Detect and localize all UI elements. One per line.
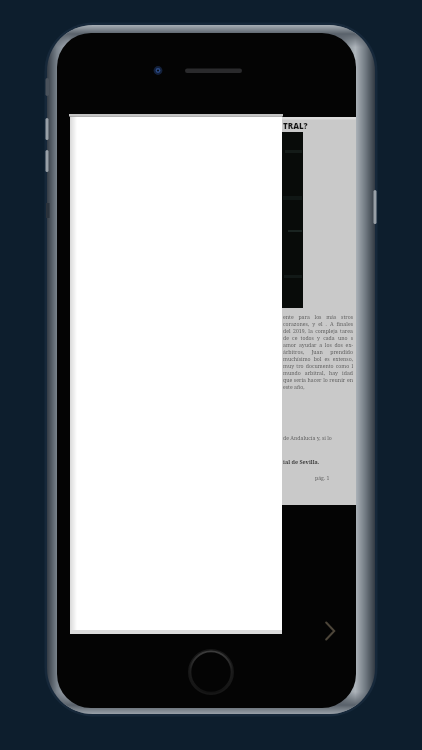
button[interactable]: Home <box>189 650 233 694</box>
button[interactable]: TRAL? <box>282 117 356 505</box>
staticText: TRAL? <box>283 120 308 131</box>
staticText: ial de Sevilla. <box>283 458 320 465</box>
staticText: de Andalucía y, si lo <box>283 434 332 441</box>
button[interactable] <box>70 114 282 634</box>
staticText: pág. 1 <box>315 474 330 481</box>
button[interactable]: Next page <box>317 618 343 644</box>
staticText: ente para los más stros corazones, y el … <box>283 313 353 390</box>
